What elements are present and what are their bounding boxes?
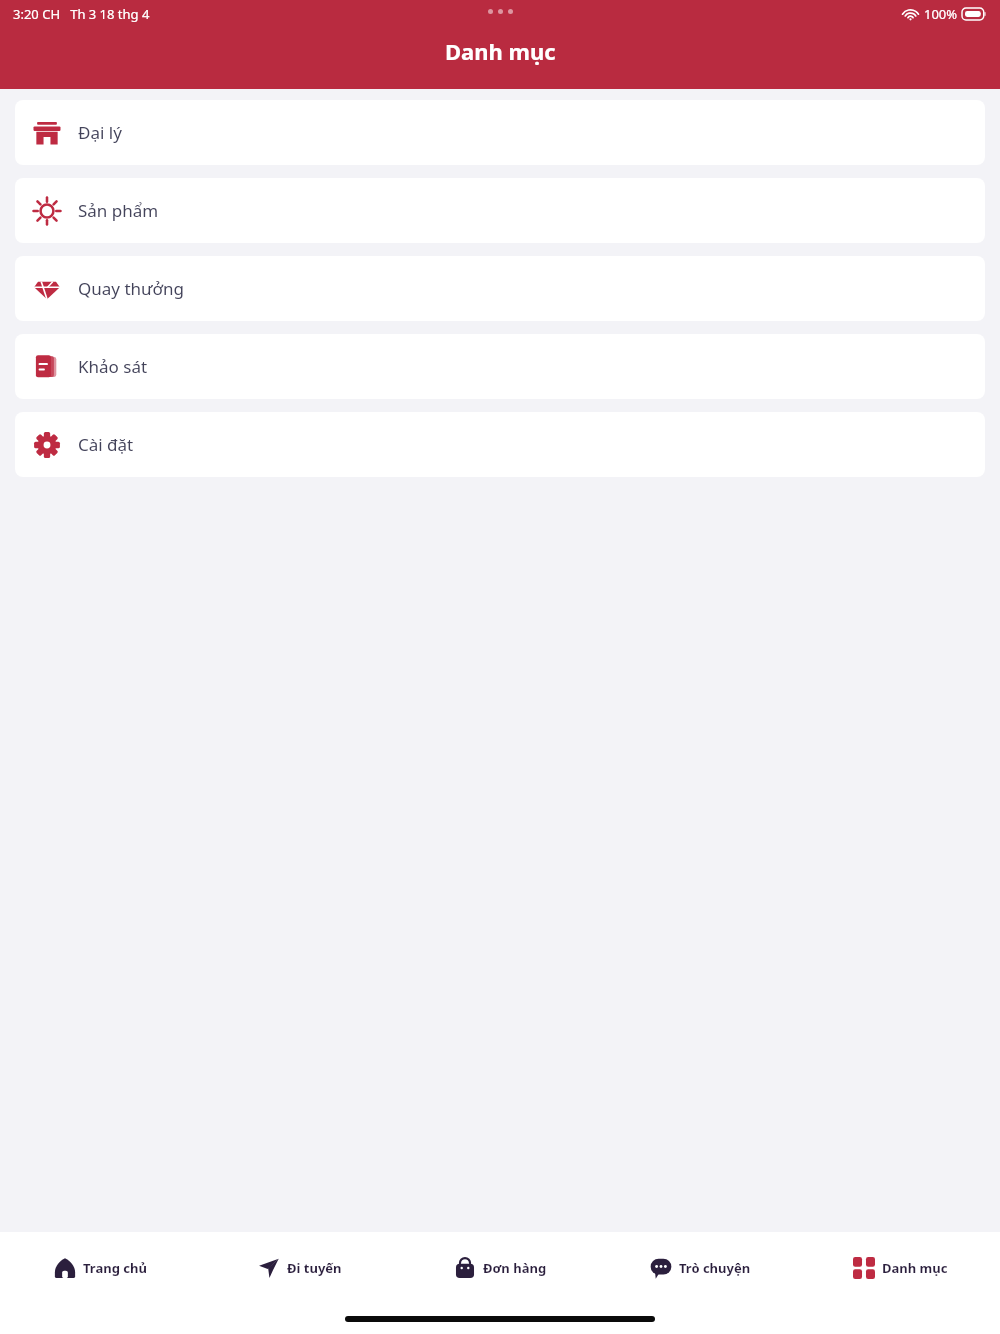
other: Trò chuyện: [650, 1257, 672, 1279]
other: Đi tuyến: [258, 1257, 280, 1279]
staticText: Danh mục: [882, 1259, 948, 1277]
staticText: Đơn hàng: [483, 1259, 547, 1277]
button[interactable]: Khảo sát: [15, 334, 985, 399]
button[interactable]: Đi tuyến: [200, 1232, 400, 1304]
staticText: Quay thưởng: [78, 277, 184, 300]
button[interactable]: Đơn hàng: [400, 1232, 600, 1304]
other: Danh mục: [853, 1257, 875, 1279]
staticText: Khảo sát: [78, 355, 148, 378]
button[interactable]: Danh mục: [800, 1232, 1000, 1304]
staticText: 100%: [924, 5, 958, 23]
staticText: Danh mục: [445, 36, 556, 66]
button[interactable]: Trang chủ: [0, 1232, 200, 1304]
button[interactable]: Đại lý: [15, 100, 985, 165]
staticText: Cài đặt: [78, 433, 134, 456]
staticText: Sản phẩm: [78, 199, 159, 222]
staticText: 3:20 CH Th 3 18 thg 4: [13, 5, 150, 23]
other: Trang chủ: [54, 1257, 76, 1279]
other: Đơn hàng: [454, 1257, 476, 1279]
button[interactable]: Trò chuyện: [600, 1232, 800, 1304]
staticText: Đại lý: [78, 121, 122, 144]
staticText: Trang chủ: [83, 1259, 147, 1277]
staticText: Trò chuyện: [679, 1259, 751, 1277]
button[interactable]: Sản phẩm: [15, 178, 985, 243]
button[interactable]: Quay thưởng: [15, 256, 985, 321]
staticText: Đi tuyến: [287, 1259, 342, 1277]
button[interactable]: Cài đặt: [15, 412, 985, 477]
